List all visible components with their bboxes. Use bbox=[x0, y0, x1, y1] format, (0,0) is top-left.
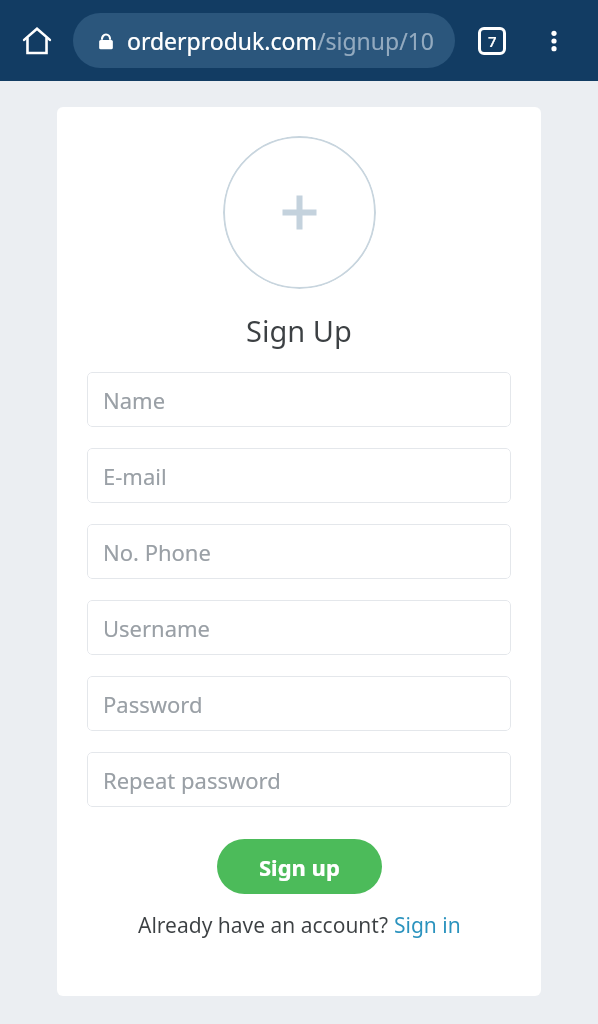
button[interactable]: E-mail bbox=[87, 448, 511, 503]
button[interactable]: Sign up bbox=[217, 839, 382, 894]
staticText: Repeat password bbox=[103, 765, 281, 795]
staticText: Sign in bbox=[394, 911, 461, 940]
button[interactable]: No. Phone bbox=[87, 524, 511, 579]
staticText: Username bbox=[103, 613, 211, 643]
staticText: Sign up bbox=[259, 852, 340, 882]
staticText: No. Phone bbox=[103, 537, 211, 567]
button[interactable]: Name bbox=[87, 372, 511, 427]
staticText: E-mail bbox=[103, 461, 167, 491]
staticText: Sign Up bbox=[246, 311, 352, 350]
staticText: orderproduk.com/signup/10 bbox=[127, 25, 435, 56]
button[interactable]: Sign in bbox=[394, 911, 461, 940]
button[interactable]: More options bbox=[532, 19, 576, 63]
button[interactable]: orderproduk.com/signup/10 bbox=[73, 13, 455, 68]
button[interactable]: Add profile photo bbox=[223, 136, 376, 289]
staticText: 7 bbox=[488, 31, 497, 51]
staticText: Name bbox=[103, 385, 166, 415]
button[interactable]: Repeat password bbox=[87, 752, 511, 807]
button[interactable]: Username bbox=[87, 600, 511, 655]
button[interactable]: Home bbox=[12, 16, 62, 66]
staticText: Already have an account? bbox=[138, 911, 394, 940]
button[interactable]: Password bbox=[87, 676, 511, 731]
staticText: Password bbox=[103, 689, 203, 719]
button[interactable]: Tabs bbox=[470, 19, 514, 63]
